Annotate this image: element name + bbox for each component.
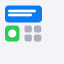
button[interactable]: Item	[24, 34, 32, 41]
button[interactable]: Item	[34, 34, 41, 41]
button[interactable]: Item	[24, 25, 32, 32]
button[interactable]: Item	[34, 25, 41, 32]
button[interactable]: Record	[5, 25, 19, 41]
button[interactable]: Featured banner	[5, 5, 42, 22]
